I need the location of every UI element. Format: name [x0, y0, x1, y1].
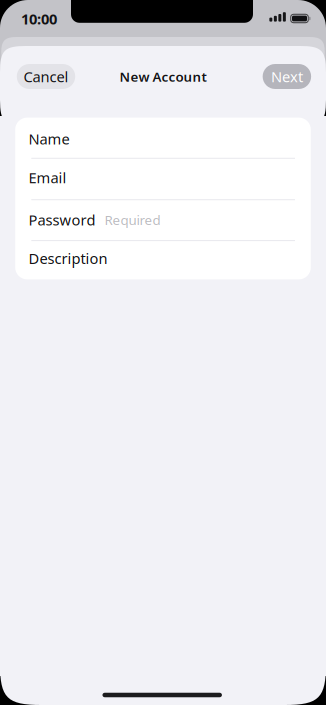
staticText: Email [29, 168, 67, 187]
staticText: Cancel [23, 67, 68, 86]
staticText: Password [29, 210, 96, 229]
staticText: Next [271, 67, 303, 86]
button[interactable]: Email [15, 157, 310, 198]
button[interactable]: Password [15, 199, 310, 240]
staticText: Required [105, 211, 161, 229]
button[interactable]: Description [15, 238, 310, 279]
staticText: Description [29, 249, 108, 268]
staticText: Name [29, 129, 70, 149]
button[interactable]: Cancel [17, 64, 75, 89]
button[interactable]: Next [263, 64, 311, 89]
staticText: New Account [119, 68, 206, 85]
staticText: 10:00 [21, 9, 57, 28]
button[interactable]: Name [15, 119, 310, 159]
